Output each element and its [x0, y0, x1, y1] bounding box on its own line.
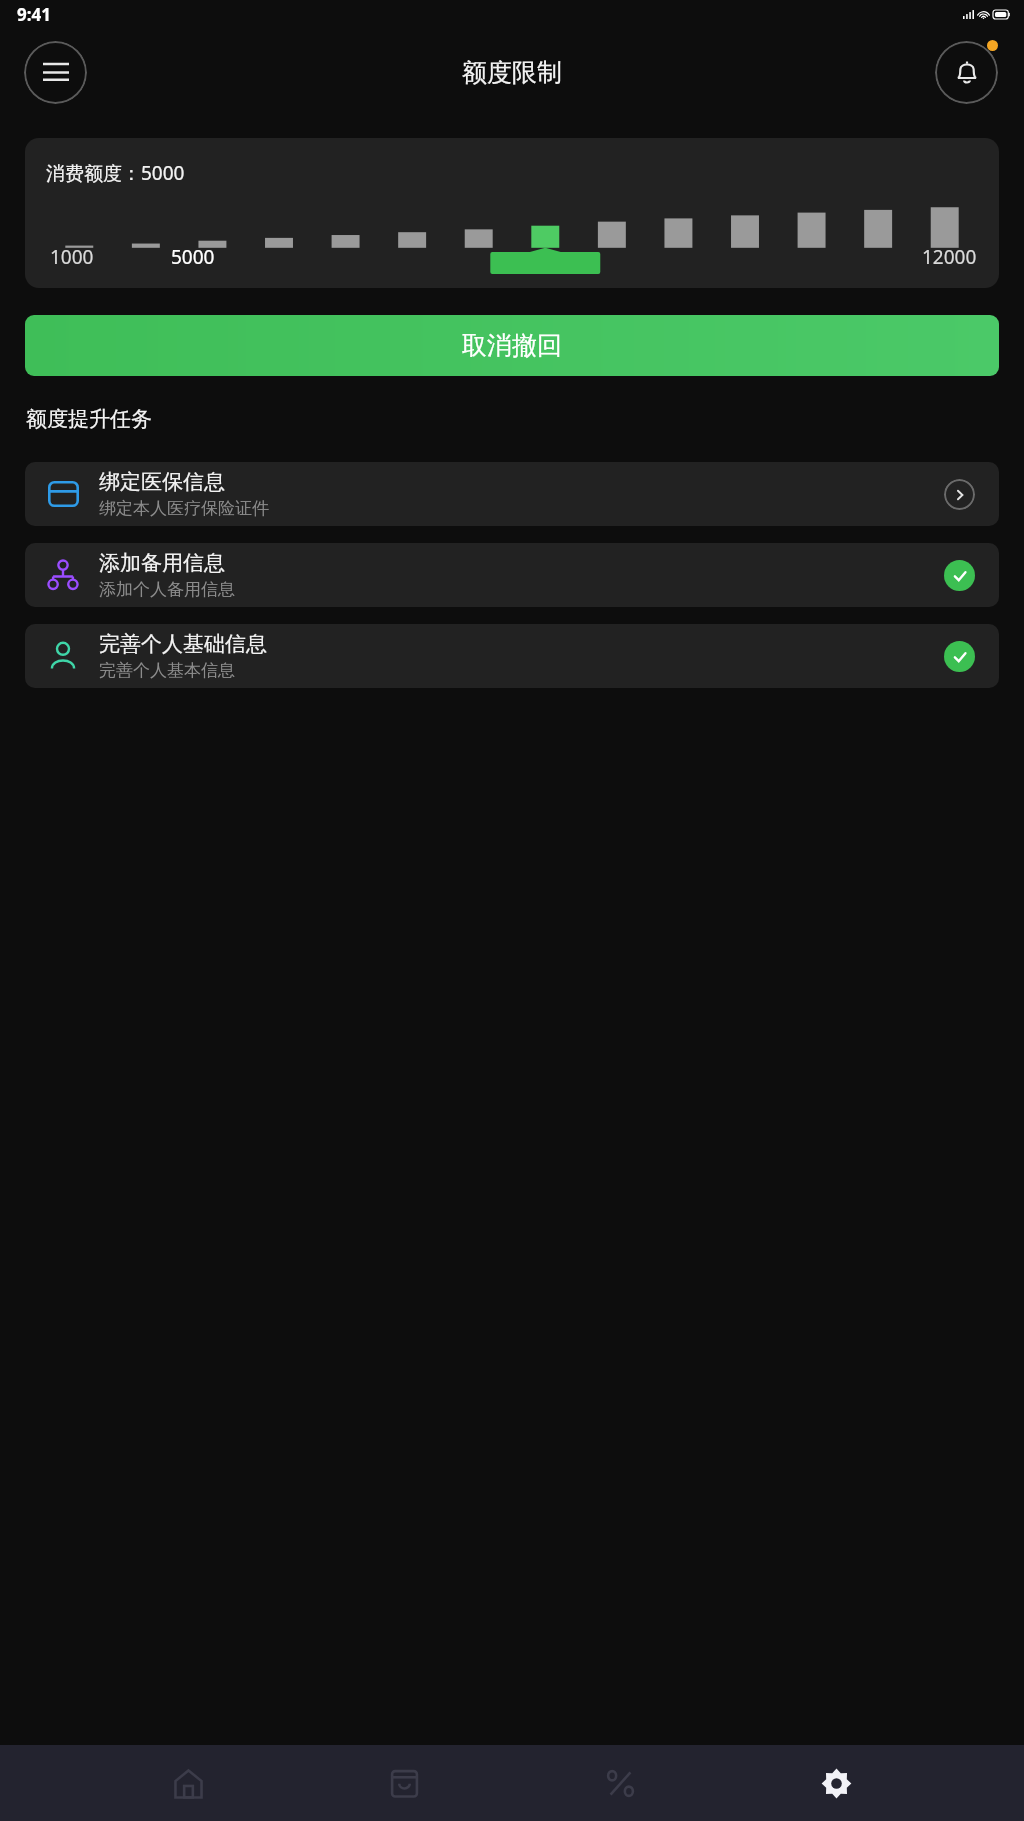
staticText: 完善个人基础信息	[99, 631, 267, 657]
staticText: 添加备用信息	[99, 550, 225, 576]
staticText: 1000	[50, 244, 94, 270]
staticText: 额度限制	[462, 57, 562, 88]
button[interactable]: 完善个人基础信息	[25, 624, 999, 688]
staticText: 取消撤回	[462, 330, 562, 361]
button[interactable]: Shop	[376, 1755, 432, 1811]
button[interactable]: 取消撤回	[25, 315, 999, 376]
button[interactable]: 添加备用信息	[25, 543, 999, 607]
button[interactable]: Discounts	[592, 1755, 648, 1811]
staticText: 额度提升任务	[26, 406, 152, 432]
button[interactable]: Settings	[808, 1755, 864, 1811]
button[interactable]: Home	[160, 1755, 216, 1811]
staticText: 完善个人基本信息	[99, 660, 235, 681]
staticText: 12000	[922, 244, 977, 270]
button[interactable]: 绑定医保信息	[25, 462, 999, 526]
staticText: 9:41	[17, 3, 51, 26]
button[interactable]: Notifications	[935, 41, 998, 104]
staticText: 5000	[171, 244, 215, 270]
button[interactable]: Menu	[24, 41, 87, 104]
staticText: 绑定本人医疗保险证件	[99, 498, 269, 519]
button[interactable]: Open	[944, 479, 975, 510]
other: Completed	[944, 641, 975, 672]
staticText: 添加个人备用信息	[99, 579, 235, 600]
staticText: 绑定医保信息	[99, 469, 225, 495]
staticText: 消费额度：5000	[46, 160, 185, 186]
other: Completed	[944, 560, 975, 591]
